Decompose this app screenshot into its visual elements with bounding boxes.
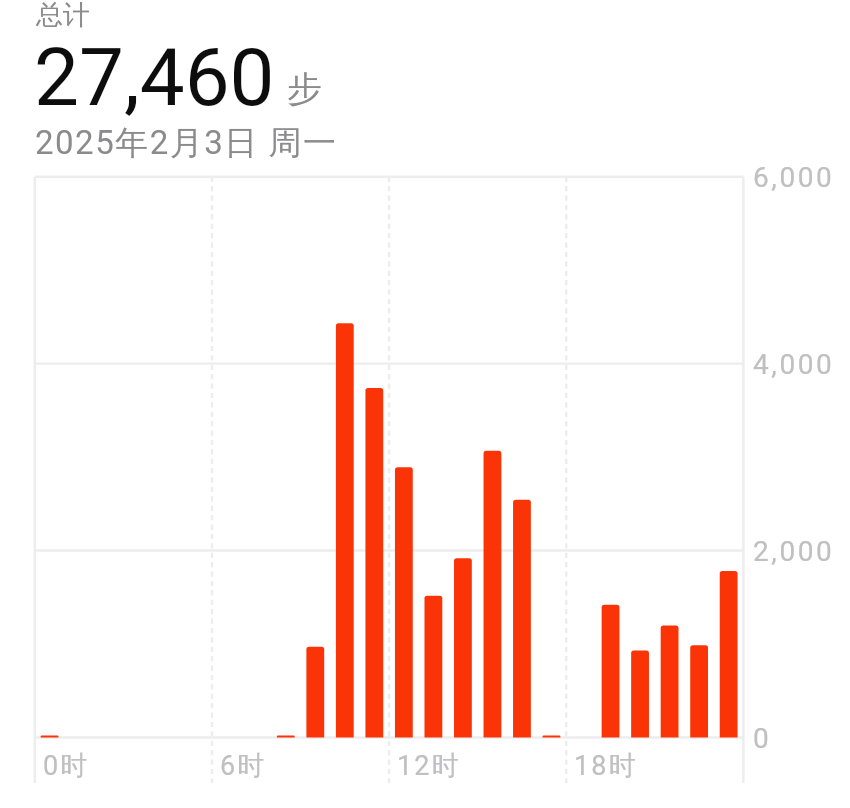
staticText: 4,000 xyxy=(753,348,835,381)
staticText: 2,000 xyxy=(753,535,835,568)
staticText: 0时 xyxy=(43,749,90,783)
staticText: 12时 xyxy=(397,749,461,783)
staticText: 总计 xyxy=(36,0,90,32)
staticText: 步 xyxy=(287,67,322,111)
staticText: 6时 xyxy=(220,749,267,783)
staticText: 0 xyxy=(753,722,772,755)
staticText: 2025年2月3日 周一 xyxy=(35,122,338,164)
button[interactable]: 总计 xyxy=(0,0,850,166)
staticText: 27,460 xyxy=(34,31,275,125)
button[interactable]: Hourly step chart for 3 February 2025 xyxy=(0,0,850,808)
staticText: 18时 xyxy=(574,749,638,783)
staticText: 6,000 xyxy=(753,161,835,194)
